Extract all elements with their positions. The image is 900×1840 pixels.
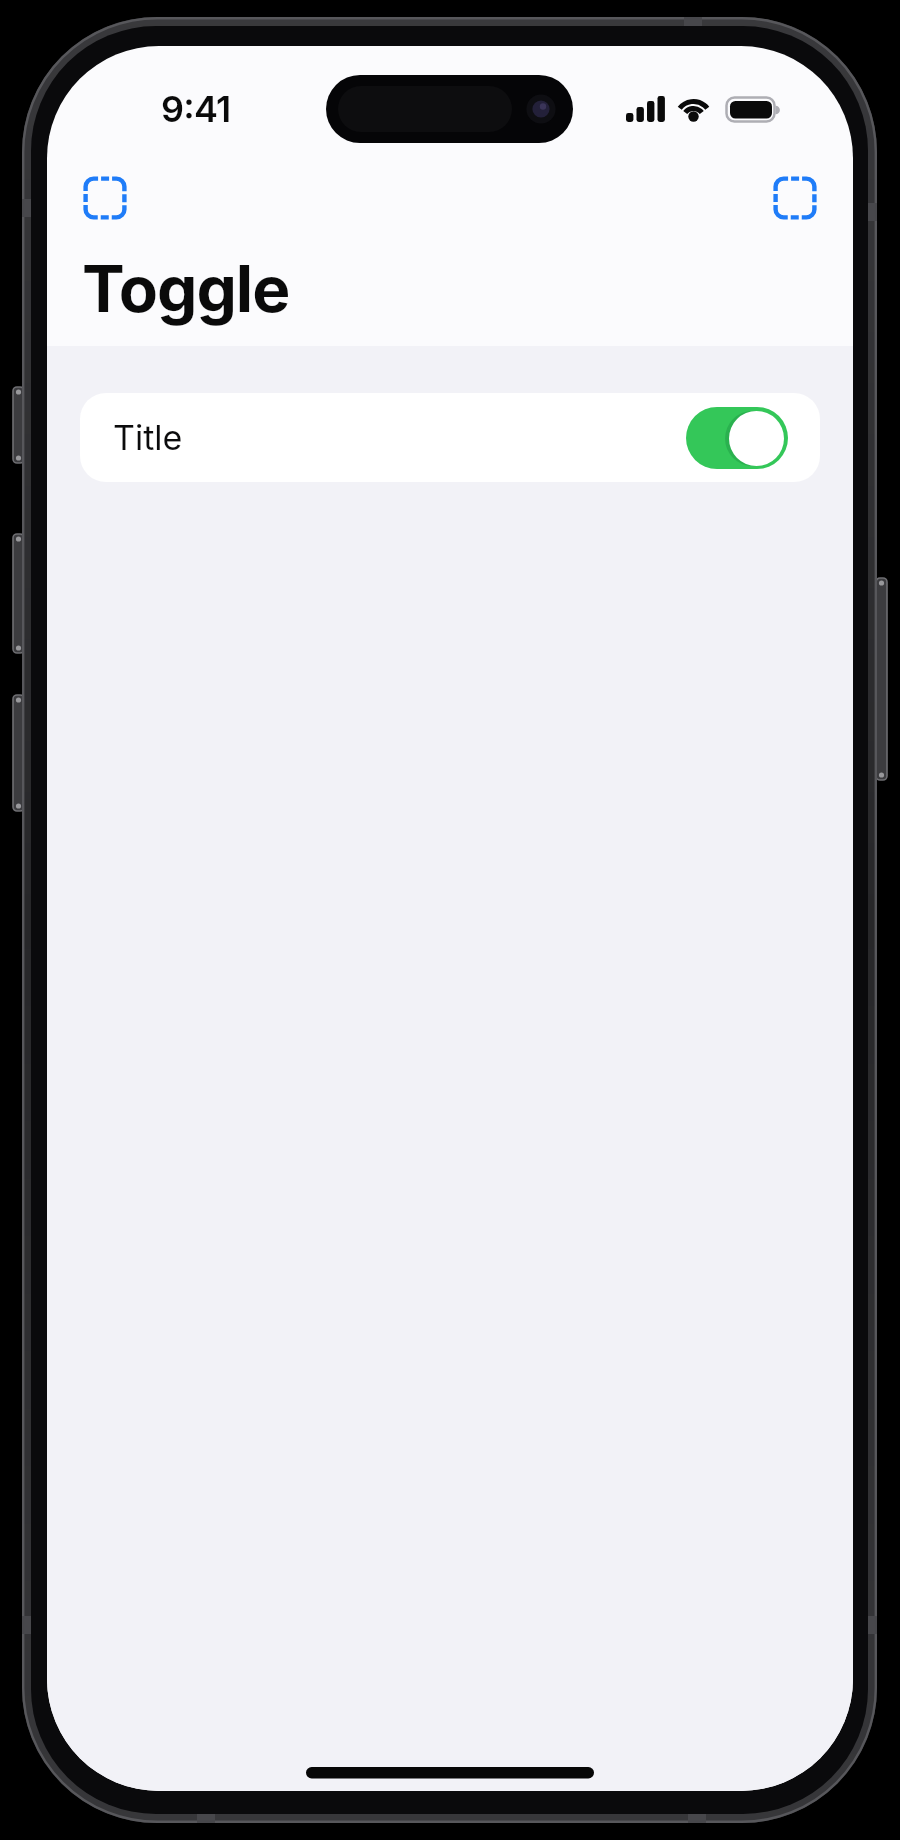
button[interactable] bbox=[686, 407, 788, 469]
button[interactable]: Title bbox=[80, 393, 820, 482]
button[interactable] bbox=[83, 176, 127, 220]
staticText: Toggle bbox=[82, 250, 290, 327]
button[interactable] bbox=[773, 176, 817, 220]
staticText: Title bbox=[113, 417, 183, 458]
staticText: 9:41 bbox=[161, 87, 231, 131]
